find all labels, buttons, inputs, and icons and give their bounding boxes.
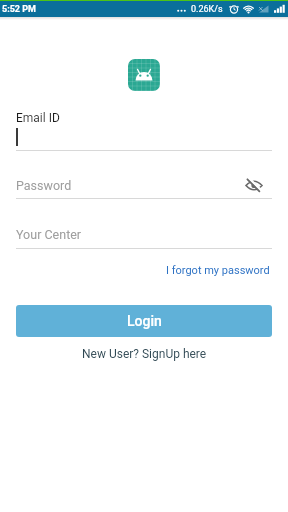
staticText: New User? SignUp here bbox=[82, 347, 207, 361]
staticText: Your Center bbox=[16, 227, 82, 242]
staticText: 5:52 PM bbox=[2, 4, 36, 15]
button[interactable]: I forgot my password bbox=[166, 264, 270, 277]
staticText: Email ID bbox=[16, 111, 60, 125]
staticText: 0.26K/s bbox=[191, 4, 223, 15]
staticText: Login bbox=[127, 313, 162, 329]
button[interactable]: New User? SignUp here bbox=[82, 347, 207, 361]
button[interactable]: Login bbox=[16, 305, 272, 337]
staticText: I forgot my password bbox=[166, 264, 270, 277]
staticText: Password bbox=[16, 178, 72, 193]
